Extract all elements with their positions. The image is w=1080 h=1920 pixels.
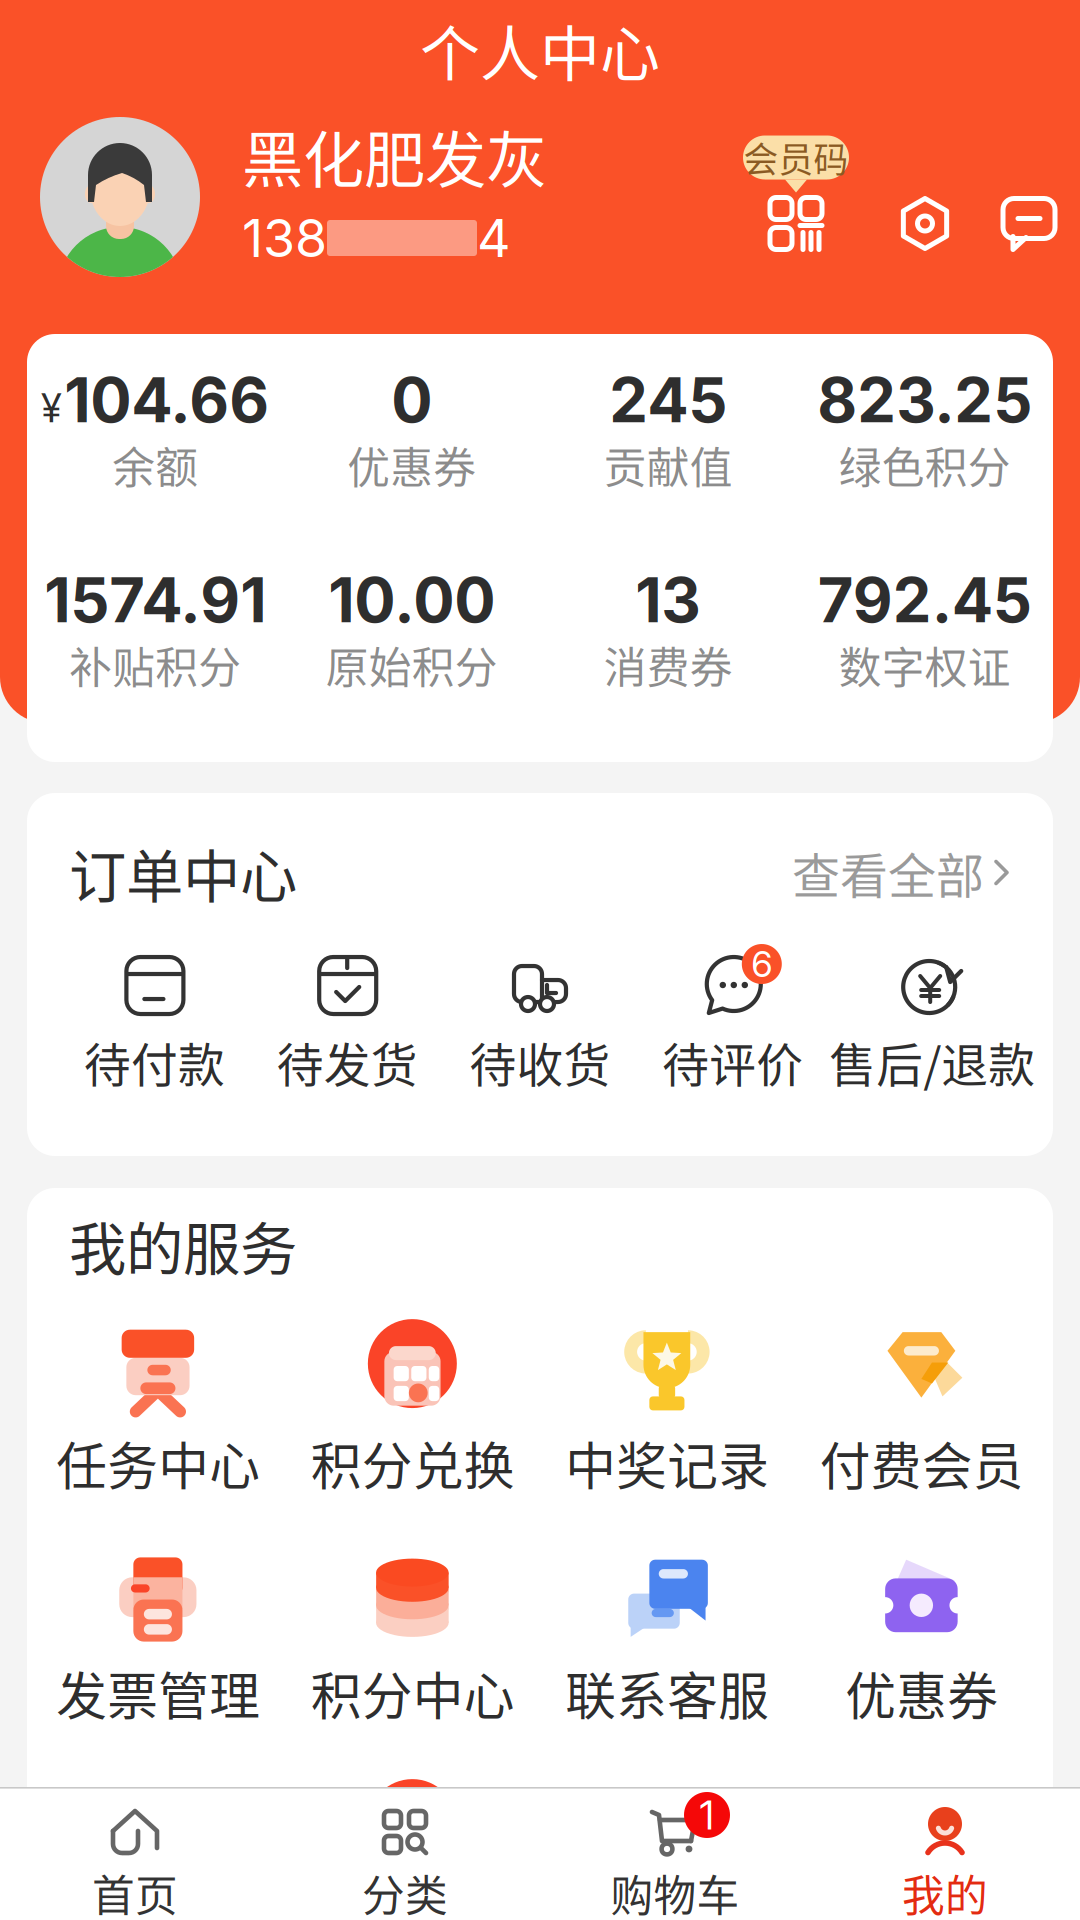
- staticText: 地址管理: [311, 1886, 515, 1920]
- button[interactable]: 1574.91: [27, 572, 283, 687]
- staticText: 待评价: [662, 1028, 803, 1096]
- staticText: 首页: [92, 1862, 178, 1920]
- button[interactable]: 发票管理: [31, 1541, 285, 1719]
- staticText: 待发货: [277, 1028, 418, 1096]
- button[interactable]: 823.25: [796, 372, 1053, 487]
- button[interactable]: 1: [540, 1787, 810, 1920]
- staticText: 积分中心: [311, 1656, 515, 1730]
- staticText: 1: [699, 1791, 714, 1839]
- button[interactable]: 245: [540, 372, 796, 487]
- staticText: 积分兑换: [311, 1426, 515, 1500]
- staticText: 购物车: [610, 1862, 739, 1920]
- staticText: 我的服务: [69, 1203, 297, 1286]
- staticText: 823.25: [817, 363, 1032, 437]
- button[interactable]: 分类: [270, 1787, 540, 1920]
- staticText: 数字权证: [839, 634, 1011, 696]
- staticText: 6: [751, 942, 772, 986]
- staticText: 订单中心: [69, 831, 297, 914]
- staticText: 792.45: [818, 563, 1032, 637]
- button[interactable]: 中奖记录: [540, 1311, 794, 1489]
- staticText: 补贴积分: [69, 634, 241, 696]
- staticText: 待收货: [469, 1028, 610, 1096]
- button[interactable]: 首页: [0, 1787, 270, 1920]
- staticText: 优惠券: [845, 1656, 998, 1730]
- staticText: 分类: [362, 1862, 448, 1920]
- button[interactable]: 我的: [810, 1787, 1080, 1920]
- button[interactable]: 0: [283, 372, 540, 487]
- button[interactable]: 物流查询: [31, 1771, 285, 1920]
- staticText: 1574.91: [44, 563, 266, 637]
- staticText: 售后/退款: [829, 1028, 1035, 1096]
- button[interactable]: 查看全部: [792, 838, 1011, 907]
- button[interactable]: 优惠券: [794, 1541, 1049, 1719]
- staticText: 余额: [112, 434, 198, 496]
- staticText: 查看全部: [792, 838, 984, 907]
- staticText: 0: [391, 363, 432, 437]
- button[interactable]: 10.00: [283, 572, 540, 687]
- staticText: 消费券: [604, 634, 733, 696]
- button[interactable]: 联系客服: [540, 1541, 794, 1719]
- staticText: 贡献值: [604, 434, 733, 496]
- staticText: 原始积分: [326, 634, 498, 696]
- staticText: 物流查询: [56, 1886, 260, 1920]
- staticText: 138: [242, 206, 327, 269]
- staticText: 绿色积分: [839, 434, 1011, 496]
- staticText: 待付款: [84, 1028, 225, 1096]
- staticText: 我的: [902, 1862, 988, 1920]
- button[interactable]: 6: [636, 954, 829, 1086]
- button[interactable]: 我的收藏: [540, 1771, 794, 1920]
- button[interactable]: 设置: [896, 194, 954, 252]
- button[interactable]: 积分中心: [285, 1541, 540, 1719]
- staticText: 联系客服: [565, 1656, 769, 1730]
- staticText: 104.66: [64, 363, 269, 437]
- staticText: 个人中心: [420, 7, 660, 93]
- staticText: 会员码: [743, 132, 848, 183]
- staticText: 付费会员: [820, 1426, 1024, 1500]
- button[interactable]: 帮助中心: [794, 1771, 1049, 1920]
- button[interactable]: 积分兑换: [285, 1311, 540, 1489]
- staticText: ¥: [41, 385, 61, 432]
- button[interactable]: 792.45: [796, 572, 1053, 687]
- button[interactable]: 付费会员: [794, 1311, 1049, 1489]
- button[interactable]: 地址管理: [285, 1771, 540, 1920]
- button[interactable]: ¥: [27, 372, 283, 487]
- staticText: 任务中心: [56, 1426, 260, 1500]
- staticText: 黑化肥发灰: [242, 112, 547, 200]
- staticText: 13: [635, 563, 701, 637]
- button[interactable]: 13: [540, 572, 796, 687]
- staticText: 发票管理: [56, 1656, 260, 1730]
- button[interactable]: 待收货: [444, 954, 636, 1086]
- staticText: 245: [609, 363, 727, 437]
- button[interactable]: 会员码: [742, 135, 850, 252]
- staticText: 帮助中心: [820, 1886, 1024, 1920]
- button[interactable]: 消息: [1000, 194, 1058, 252]
- button[interactable]: 售后/退款: [829, 954, 1022, 1086]
- staticText: 我的收藏: [565, 1886, 769, 1920]
- staticText: 4: [477, 206, 511, 269]
- staticText: 优惠券: [347, 434, 476, 496]
- staticText: 中奖记录: [565, 1426, 769, 1500]
- button[interactable]: 待发货: [251, 954, 444, 1086]
- staticText: 10.00: [328, 563, 495, 637]
- button[interactable]: 待付款: [58, 954, 251, 1086]
- button[interactable]: 任务中心: [31, 1311, 285, 1489]
